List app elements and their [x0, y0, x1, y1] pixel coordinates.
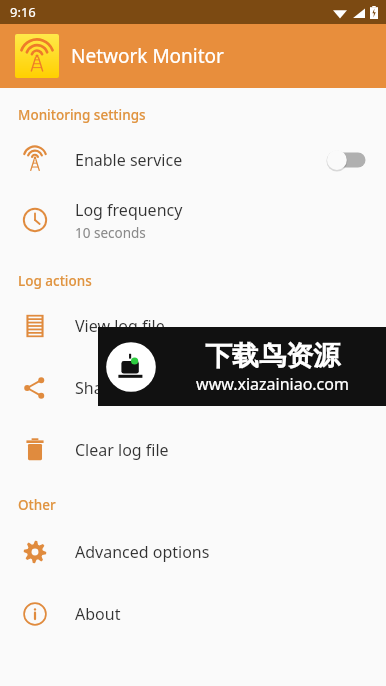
button[interactable]: Enable service toggle: [320, 145, 370, 175]
button[interactable]: Clear log file: [0, 430, 386, 470]
staticText: Log frequency: [75, 199, 183, 221]
staticText: Other: [18, 496, 56, 514]
button[interactable]: Log frequency: [0, 196, 386, 244]
staticText: 9:16: [10, 3, 36, 21]
staticText: Enable service: [75, 149, 183, 171]
staticText: Clear log file: [75, 439, 169, 461]
button[interactable]: Enable service: [0, 140, 386, 180]
button[interactable]: Advanced options: [0, 532, 386, 572]
button[interactable]: Share log file: [0, 368, 386, 408]
button[interactable]: View log file: [0, 306, 386, 346]
staticText: www.xiazainiao.com: [196, 373, 349, 395]
staticText: Advanced options: [75, 541, 210, 563]
staticText: 10 seconds: [75, 224, 146, 242]
staticText: View log file: [75, 315, 165, 337]
staticText: Network Monitor: [71, 43, 224, 69]
staticText: Monitoring settings: [18, 106, 146, 124]
staticText: Share log file: [75, 377, 173, 399]
staticText: About: [75, 603, 121, 625]
staticText: 下载鸟资源: [205, 339, 340, 373]
button[interactable]: About: [0, 594, 386, 634]
staticText: Log actions: [18, 272, 92, 290]
